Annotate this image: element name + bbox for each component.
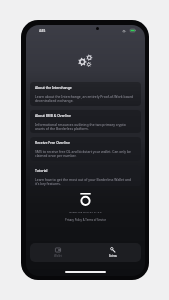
staticText: 4:35 [39,29,46,33]
staticText: Tutorial [35,168,48,173]
staticText: Receive Free Overline [35,140,70,145]
button[interactable]: Extras settings [79,55,92,66]
button[interactable]: Wallet [30,243,85,262]
button[interactable]: About EMB & Overline [30,110,141,133]
button[interactable]: Extras [85,243,141,262]
staticText: Wallet [54,254,62,258]
staticText: About EMB & Overline [35,113,71,118]
button[interactable]: About the Interchange [30,82,141,106]
staticText: Learn how to get the most out of your Bo… [35,177,136,186]
staticText: About the Interchange [35,85,72,90]
staticText: Privacy Policy & Terms of Service [26,218,145,222]
staticText: Extras [109,254,117,258]
staticText: OVERLINE WALLET v1.0.0 [26,210,145,213]
staticText: Learn about the Interchange, an entirely… [35,94,136,103]
button[interactable]: Tutorial [30,165,141,186]
staticText: SMS to receive free OL and kickstart you… [35,149,136,158]
button[interactable]: Receive Free Overline [30,137,141,161]
staticText: Informational resources outlining the tw… [35,122,136,131]
